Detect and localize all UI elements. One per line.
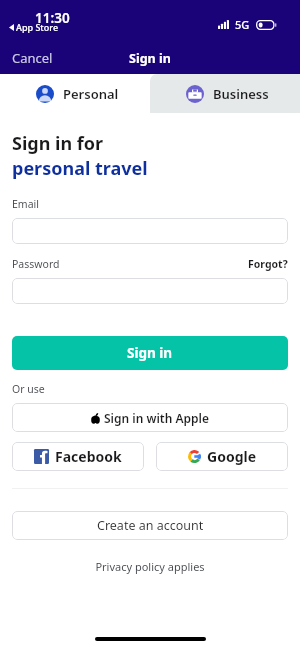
button[interactable]: Business (150, 74, 300, 113)
staticText: Sign in (127, 344, 173, 362)
staticText: Sign in with Apple (104, 410, 209, 426)
button[interactable] (12, 278, 288, 304)
staticText: Google (207, 447, 257, 466)
button[interactable]: Google (156, 442, 288, 471)
staticText: 5G (235, 17, 250, 32)
staticText: Or use (12, 382, 45, 396)
button[interactable]: Facebook (12, 442, 144, 471)
button[interactable]: Sign in (12, 336, 288, 370)
button[interactable]: Create an account (12, 511, 288, 540)
button[interactable]: Cancel (0, 46, 65, 70)
staticText: Cancel (12, 49, 53, 67)
staticText: Password (12, 257, 60, 271)
staticText: Personal (63, 85, 119, 103)
staticText: Email (12, 197, 39, 211)
staticText: personal travel (12, 156, 148, 181)
staticText: Sign in (129, 50, 171, 67)
button[interactable]: Forgot? (248, 257, 288, 271)
staticText: Sign in for (12, 131, 104, 156)
staticText: Facebook (55, 447, 122, 466)
button[interactable] (12, 218, 288, 244)
button[interactable]: Sign in with Apple (12, 403, 288, 432)
staticText: Forgot? (248, 257, 288, 271)
staticText: Create an account (97, 517, 204, 534)
staticText: Privacy policy applies (12, 559, 288, 574)
staticText: Business (213, 85, 269, 103)
staticText: App Store (16, 21, 59, 33)
staticText: 11:30 (35, 9, 70, 27)
button[interactable]: Personal (0, 74, 150, 113)
